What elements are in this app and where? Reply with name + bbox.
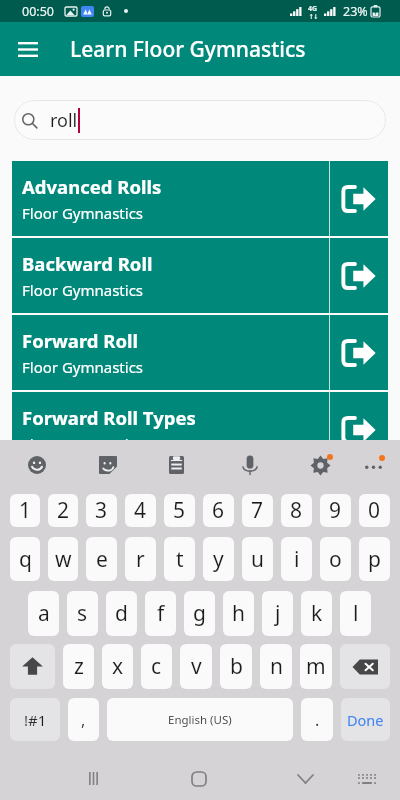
button[interactable]: o: [320, 537, 351, 581]
button[interactable]: Open: [330, 315, 388, 390]
staticText: Floor Gymnastics: [22, 434, 144, 440]
staticText: w: [55, 545, 72, 574]
button[interactable]: .: [301, 698, 333, 741]
button[interactable]: Voice input: [228, 443, 272, 487]
staticText: Advanced Rolls: [22, 174, 162, 199]
staticText: English (US): [168, 712, 232, 728]
staticText: q: [19, 545, 32, 574]
button[interactable]: Settings: [298, 443, 342, 487]
staticText: j: [275, 599, 281, 628]
button[interactable]: Stickers: [86, 443, 130, 487]
staticText: 1: [19, 496, 32, 525]
button[interactable]: Back: [283, 757, 327, 800]
button[interactable]: 3: [86, 494, 117, 527]
button[interactable]: h: [223, 591, 254, 636]
button[interactable]: z: [63, 644, 94, 689]
button[interactable]: p: [359, 537, 390, 581]
button[interactable]: ,: [68, 698, 99, 741]
button[interactable]: a: [28, 591, 59, 636]
button[interactable]: Emoji: [15, 443, 59, 487]
button[interactable]: f: [145, 591, 176, 636]
button[interactable]: Forward Roll: [12, 315, 388, 390]
button[interactable]: Advanced Rolls: [12, 161, 388, 236]
staticText: f: [157, 599, 165, 628]
staticText: g: [193, 599, 206, 628]
button[interactable]: l: [340, 591, 371, 636]
button[interactable]: Backward Roll: [12, 238, 388, 313]
staticText: !#1: [24, 710, 47, 730]
staticText: 8: [290, 496, 303, 525]
button[interactable]: 1: [10, 494, 40, 527]
staticText: 00:50: [22, 3, 54, 20]
button[interactable]: n: [260, 644, 292, 689]
button[interactable]: x: [102, 644, 133, 689]
button[interactable]: Open: [330, 392, 388, 440]
button[interactable]: English (US): [107, 698, 293, 741]
button[interactable]: q: [10, 537, 40, 581]
staticText: s: [77, 599, 88, 628]
button[interactable]: t: [164, 537, 195, 581]
button[interactable]: e: [86, 537, 117, 581]
staticText: 0: [368, 496, 381, 525]
button[interactable]: 2: [48, 494, 78, 527]
button[interactable]: 4: [125, 494, 156, 527]
button[interactable]: Home: [177, 757, 221, 800]
button[interactable]: 9: [320, 494, 351, 527]
button[interactable]: u: [242, 537, 273, 581]
button[interactable]: Forward Roll Types: [12, 392, 388, 440]
button[interactable]: w: [48, 537, 78, 581]
button[interactable]: 8: [281, 494, 312, 527]
staticText: Learn Floor Gymnastics: [70, 35, 306, 64]
staticText: z: [74, 652, 84, 681]
button[interactable]: Shift: [10, 644, 55, 689]
button[interactable]: 7: [242, 494, 273, 527]
staticText: 2: [57, 496, 70, 525]
button[interactable]: Menu: [0, 22, 55, 76]
staticText: Forward Roll Types: [22, 405, 196, 430]
button[interactable]: More options: [351, 443, 395, 487]
staticText: Floor Gymnastics: [22, 357, 144, 377]
button[interactable]: Done: [341, 698, 390, 741]
staticText: Backward Roll: [22, 251, 153, 276]
button[interactable]: !#1: [10, 698, 60, 741]
button[interactable]: Hide keyboard: [345, 757, 389, 800]
button[interactable]: Open: [330, 161, 388, 236]
staticText: 9: [329, 496, 342, 525]
staticText: 6: [212, 496, 225, 525]
staticText: Floor Gymnastics: [22, 203, 144, 223]
staticText: d: [115, 599, 128, 628]
button[interactable]: b: [220, 644, 252, 689]
button[interactable]: 0: [359, 494, 390, 527]
button[interactable]: m: [300, 644, 332, 689]
button[interactable]: r: [125, 537, 156, 581]
button[interactable]: s: [67, 591, 98, 636]
staticText: u: [251, 545, 264, 574]
button[interactable]: 6: [203, 494, 234, 527]
button[interactable]: Clipboard: [154, 443, 198, 487]
staticText: Floor Gymnastics: [22, 280, 144, 300]
staticText: k: [311, 599, 323, 628]
staticText: 3: [95, 496, 108, 525]
button[interactable]: j: [262, 591, 293, 636]
button[interactable]: d: [106, 591, 137, 636]
button[interactable]: Backspace: [340, 644, 390, 689]
button[interactable]: Open: [330, 238, 388, 313]
button[interactable]: v: [180, 644, 212, 689]
staticText: m: [306, 652, 326, 681]
button[interactable]: k: [301, 591, 332, 636]
button[interactable]: roll: [14, 100, 386, 140]
button[interactable]: g: [184, 591, 215, 636]
button[interactable]: Recent apps: [71, 757, 115, 800]
button[interactable]: y: [203, 537, 234, 581]
staticText: Forward Roll: [22, 328, 139, 353]
button[interactable]: 5: [164, 494, 195, 527]
staticText: y: [213, 545, 224, 574]
staticText: r: [136, 545, 145, 574]
staticText: t: [176, 545, 184, 574]
staticText: 23%: [343, 3, 368, 20]
button[interactable]: c: [141, 644, 172, 689]
button[interactable]: i: [281, 537, 312, 581]
staticText: h: [232, 599, 245, 628]
staticText: 4G: [308, 4, 318, 14]
staticText: v: [191, 652, 202, 681]
